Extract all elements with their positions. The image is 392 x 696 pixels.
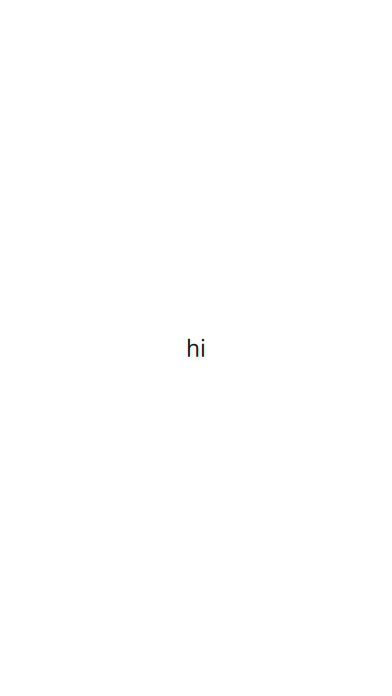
staticText: hi xyxy=(186,333,206,363)
